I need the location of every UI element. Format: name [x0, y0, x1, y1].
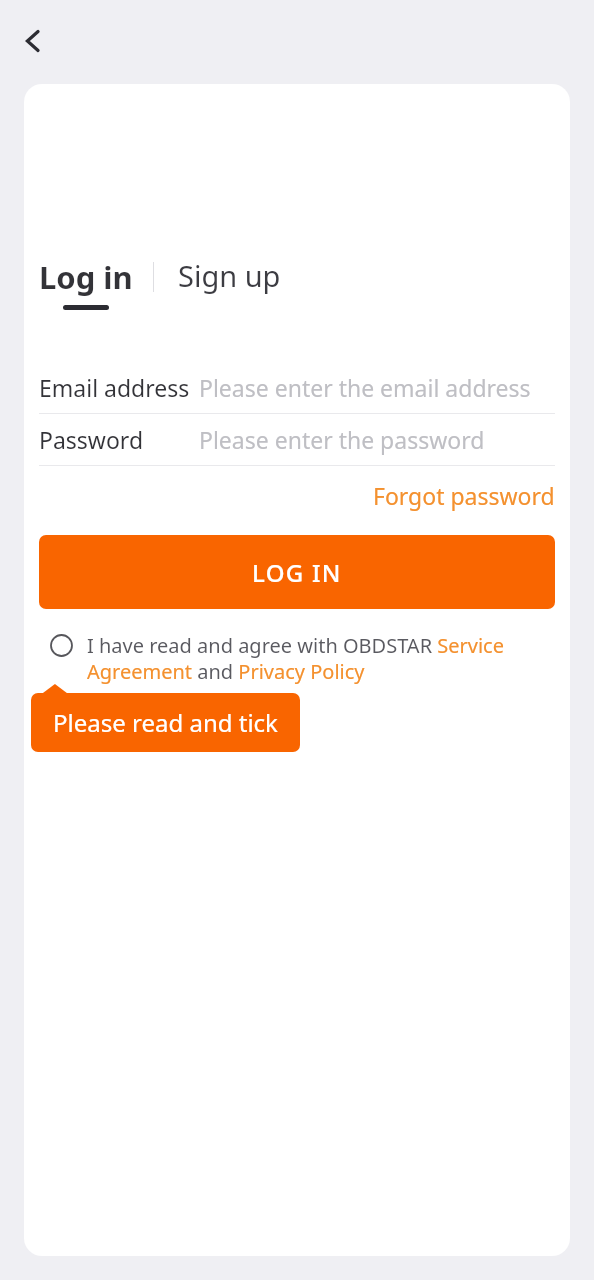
staticText: Email address — [39, 372, 199, 403]
staticText: Log in — [39, 256, 133, 298]
button[interactable]: Sign up — [178, 256, 281, 295]
button[interactable]: Agree — [39, 623, 555, 684]
button[interactable]: LOG IN — [39, 535, 555, 609]
button[interactable]: Email address — [39, 362, 555, 413]
staticText: Please read and tick — [53, 706, 278, 739]
staticText: I have read and agree with OBDSTAR Servi… — [87, 632, 555, 684]
staticText: Please enter the email address — [199, 372, 531, 403]
button[interactable]: Password — [39, 414, 555, 465]
staticText: Forgot password — [373, 480, 555, 511]
staticText: Password — [39, 424, 199, 455]
button[interactable]: Forgot password — [373, 480, 555, 511]
staticText: Sign up — [178, 256, 281, 295]
button[interactable]: Log in — [39, 256, 133, 310]
other: Agree — [39, 623, 83, 667]
staticText: Please enter the password — [199, 424, 485, 455]
button[interactable]: Please read and tick — [31, 693, 300, 752]
button[interactable]: Back — [8, 16, 58, 66]
staticText: LOG IN — [252, 556, 342, 589]
